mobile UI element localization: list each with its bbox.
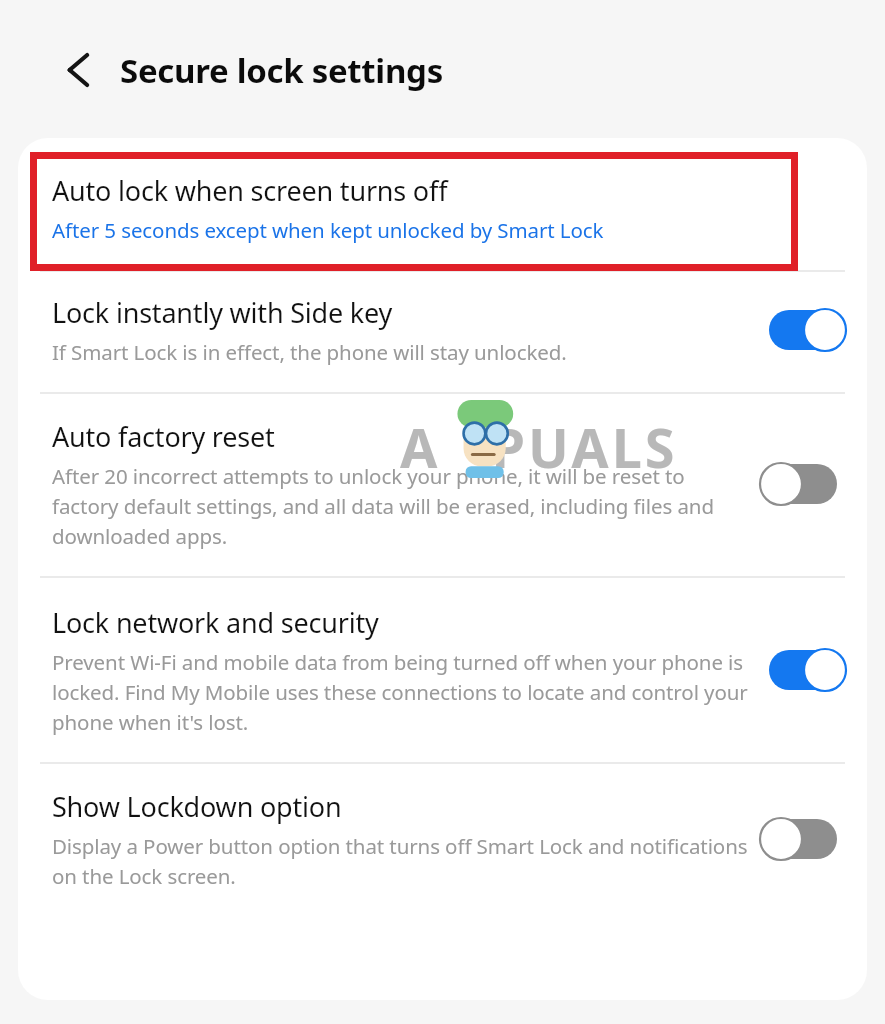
button[interactable]: Lock network and security bbox=[18, 578, 867, 762]
button[interactable]: Toggle off bbox=[763, 815, 843, 863]
staticText: If Smart Lock is in effect, the phone wi… bbox=[52, 338, 749, 366]
button[interactable]: Toggle on bbox=[763, 646, 843, 694]
staticText: Display a Power button option that turns… bbox=[52, 832, 749, 890]
staticText: Secure lock settings bbox=[120, 48, 443, 93]
staticText: Lock instantly with Side key bbox=[52, 294, 393, 331]
staticText: Auto factory reset bbox=[52, 418, 275, 455]
button[interactable]: Back bbox=[44, 44, 96, 96]
button[interactable]: Auto factory reset bbox=[18, 394, 867, 576]
staticText: After 5 seconds except when kept unlocke… bbox=[52, 216, 843, 244]
button[interactable]: Toggle off bbox=[763, 460, 843, 508]
staticText: Prevent Wi-Fi and mobile data from being… bbox=[52, 648, 749, 736]
button[interactable]: Auto lock when screen turns off bbox=[18, 138, 867, 270]
button[interactable]: Show Lockdown option bbox=[18, 764, 867, 916]
staticText: Show Lockdown option bbox=[52, 788, 342, 825]
button[interactable]: Toggle on bbox=[763, 306, 843, 354]
staticText: After 20 incorrect attempts to unlock yo… bbox=[52, 462, 749, 550]
staticText: A PUALS bbox=[400, 410, 678, 484]
button[interactable]: Lock instantly with Side key bbox=[18, 272, 867, 392]
staticText: Lock network and security bbox=[52, 604, 379, 641]
staticText: Auto lock when screen turns off bbox=[52, 172, 448, 209]
